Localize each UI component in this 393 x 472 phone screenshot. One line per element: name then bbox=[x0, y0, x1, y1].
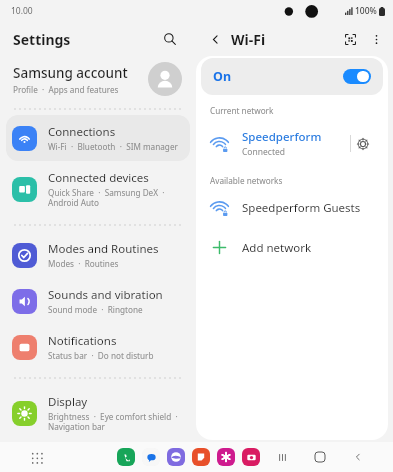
button[interactable]: App bbox=[167, 448, 185, 466]
staticText: Connections bbox=[48, 124, 116, 140]
staticText: Speedperform bbox=[242, 129, 322, 145]
staticText: On bbox=[213, 68, 343, 85]
button[interactable]: Connections bbox=[6, 115, 190, 161]
staticText: Current network bbox=[210, 105, 274, 116]
staticText: Speedperform Guests bbox=[242, 200, 361, 216]
button[interactable]: Recents bbox=[273, 448, 291, 466]
button[interactable]: Sounds and vibration bbox=[6, 278, 190, 324]
staticText: Connected bbox=[242, 146, 285, 158]
staticText: Add network bbox=[242, 240, 312, 256]
button[interactable]: Connected devices bbox=[6, 161, 190, 217]
staticText: Modes and Routines bbox=[48, 241, 159, 257]
button[interactable]: App bbox=[117, 448, 135, 466]
button[interactable]: On bbox=[201, 58, 383, 95]
button[interactable]: Modes and Routines bbox=[6, 232, 190, 278]
staticText: Quick Share · Samsung DeX · Android Auto bbox=[48, 187, 182, 208]
button[interactable]: App bbox=[242, 448, 260, 466]
staticText: Profile · Apps and features bbox=[13, 84, 119, 95]
button[interactable]: Speedperform Guests bbox=[196, 192, 388, 224]
button[interactable]: Display bbox=[6, 385, 190, 441]
staticText: Sounds and vibration bbox=[48, 287, 163, 303]
staticText: Display bbox=[48, 394, 88, 410]
button[interactable]: Speedperform bbox=[201, 121, 383, 166]
button[interactable]: More options bbox=[365, 28, 387, 50]
staticText: Connected devices bbox=[48, 170, 149, 186]
button[interactable]: Notifications bbox=[6, 324, 190, 370]
button[interactable]: App bbox=[192, 448, 210, 466]
staticText: Sound mode · Ringtone bbox=[48, 304, 143, 315]
staticText: Available networks bbox=[210, 175, 283, 186]
button[interactable]: Home bbox=[311, 448, 329, 466]
staticText: Wi-Fi · Bluetooth · SIM manager bbox=[48, 141, 178, 152]
button[interactable]: Back bbox=[205, 29, 225, 49]
button[interactable]: Search bbox=[158, 27, 182, 51]
button[interactable]: Scan QR code bbox=[339, 28, 361, 50]
button[interactable]: Add network bbox=[196, 232, 388, 263]
staticText: 10.00 bbox=[11, 5, 33, 17]
staticText: Wi-Fi bbox=[231, 30, 266, 49]
staticText: Notifications bbox=[48, 333, 117, 349]
button[interactable]: Network settings bbox=[351, 132, 375, 156]
button[interactable]: Back bbox=[349, 448, 367, 466]
staticText: Status bar · Do not disturb bbox=[48, 350, 154, 361]
button[interactable]: App bbox=[142, 448, 160, 466]
staticText: Samsung account bbox=[13, 64, 128, 82]
staticText: Settings bbox=[13, 30, 71, 49]
button[interactable]: Samsung account bbox=[0, 56, 196, 102]
button[interactable]: App bbox=[217, 448, 235, 466]
staticText: Brightness · Eye comfort shield · Naviga… bbox=[48, 411, 182, 432]
button[interactable]: Apps bbox=[26, 447, 46, 467]
staticText: Modes · Routines bbox=[48, 258, 119, 269]
staticText: 100% bbox=[355, 5, 377, 17]
